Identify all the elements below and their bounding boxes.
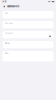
button[interactable]: Close	[3, 6, 5, 7]
staticText: Notes	[5, 52, 9, 54]
button[interactable]: Password	[2, 31, 53, 38]
staticText: Username	[5, 22, 13, 24]
button[interactable]: Website	[2, 41, 53, 48]
staticText: Website	[5, 42, 10, 44]
staticText: Password	[5, 32, 13, 34]
staticText: Add Password	[7, 5, 19, 8]
button[interactable]: Username	[2, 21, 53, 28]
button[interactable]: Notes	[2, 51, 53, 61]
staticText: 9:41	[3, 1, 7, 3]
staticText: Title	[5, 12, 8, 14]
button[interactable]: Title	[2, 11, 53, 18]
